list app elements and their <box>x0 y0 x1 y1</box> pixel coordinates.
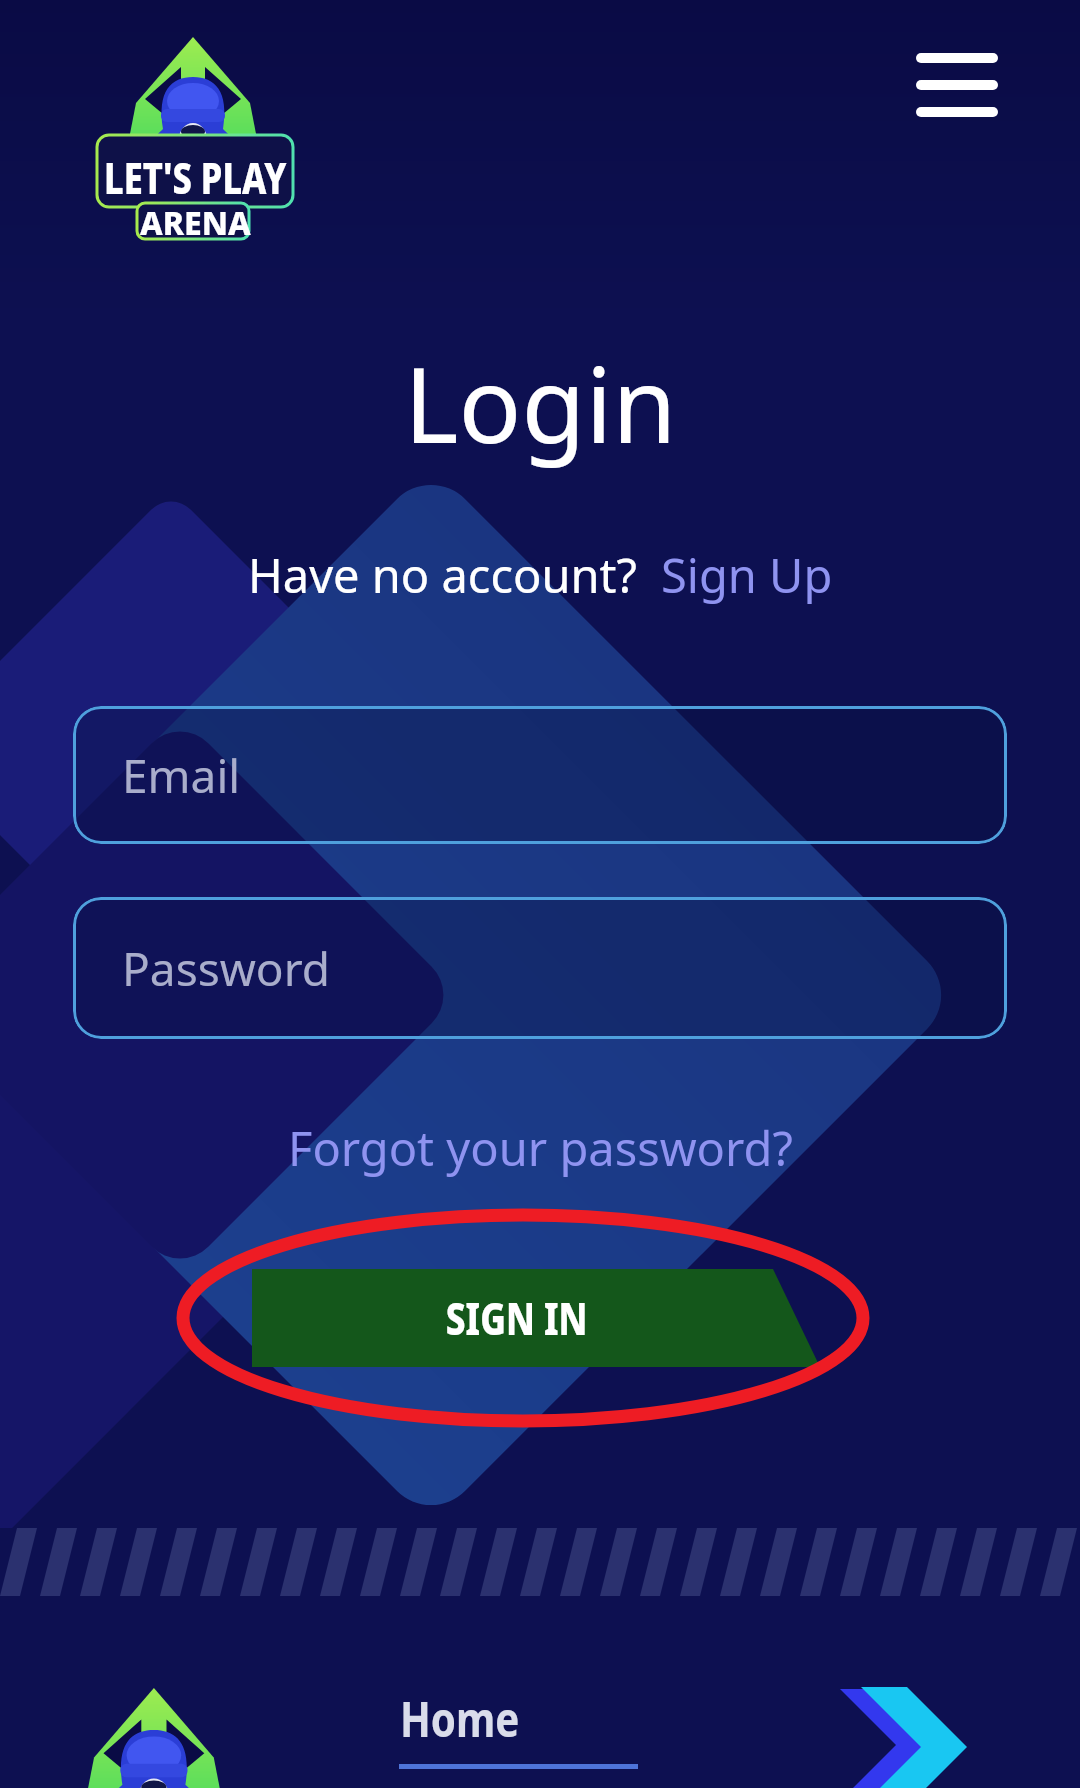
staticText: Login <box>404 332 677 474</box>
button[interactable] <box>820 1680 990 1788</box>
staticText: Password <box>122 937 331 1000</box>
staticText: Have no account? <box>248 543 637 607</box>
button[interactable]: Email <box>73 706 1007 844</box>
staticText: Home <box>400 1686 520 1751</box>
staticText: Sign Up <box>661 543 833 607</box>
button[interactable] <box>51 1686 261 1788</box>
staticText: Email <box>122 744 241 807</box>
button[interactable]: Forgot your password? <box>288 1116 793 1180</box>
staticText: ARENA <box>140 201 251 245</box>
staticText: Forgot your password? <box>288 1116 793 1180</box>
staticText: LET'S PLAY <box>104 149 287 206</box>
button[interactable]: Sign Up <box>661 543 833 607</box>
staticText: SIGN IN <box>446 1288 588 1348</box>
button[interactable]: Password <box>73 897 1007 1039</box>
button[interactable] <box>95 35 295 247</box>
button[interactable] <box>905 40 1010 130</box>
button[interactable]: SIGN IN <box>252 1269 820 1367</box>
button[interactable]: Home <box>380 1678 660 1788</box>
